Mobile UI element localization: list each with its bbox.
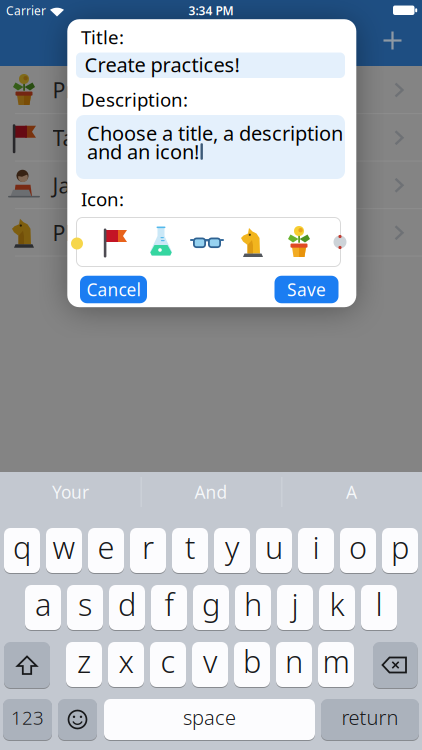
staticText: t [185, 527, 195, 567]
button[interactable]: Emoji [58, 698, 97, 741]
button[interactable]: n [276, 641, 312, 688]
staticText: a [35, 584, 51, 624]
button[interactable]: a [25, 584, 61, 631]
button[interactable]: o [340, 527, 376, 574]
staticText: s [78, 584, 92, 624]
staticText: 123 [11, 705, 44, 730]
staticText: Carrier [6, 2, 46, 18]
staticText: 3:34 PM [188, 2, 233, 18]
button[interactable]: y [214, 527, 250, 574]
staticText: d [118, 584, 136, 624]
button[interactable]: z [66, 641, 102, 688]
button[interactable]: c [150, 641, 186, 688]
staticText: And [194, 480, 227, 503]
button[interactable]: A [281, 472, 421, 512]
staticText: e [97, 527, 114, 567]
staticText: j [291, 584, 298, 624]
button[interactable]: Chess knight icon [235, 224, 271, 260]
staticText: Play chess [52, 219, 155, 247]
button[interactable]: d [109, 584, 145, 631]
button[interactable]: Javascript [0, 161, 422, 209]
staticText: w [52, 527, 75, 567]
staticText: y [225, 527, 239, 567]
staticText: i [312, 527, 319, 567]
button[interactable]: Delete [373, 641, 417, 689]
button[interactable]: Add [370, 18, 414, 62]
staticText: Title: [81, 25, 124, 49]
staticText: A [346, 480, 357, 503]
button[interactable]: s [67, 584, 103, 631]
staticText: r [142, 527, 154, 567]
staticText: Your [52, 480, 89, 503]
button[interactable]: Save [274, 276, 338, 303]
button[interactable]: And [141, 472, 281, 512]
button[interactable]: t [172, 527, 208, 574]
button[interactable]: g [193, 584, 229, 631]
staticText: l [375, 584, 382, 624]
staticText: and an icon! [87, 138, 199, 165]
staticText: Javascript [52, 171, 149, 199]
button[interactable]: Flask icon [143, 224, 179, 260]
staticText: b [243, 641, 261, 681]
button[interactable]: b [234, 641, 270, 688]
button[interactable]: Cancel [80, 276, 147, 303]
staticText: space [183, 704, 236, 731]
staticText: q [13, 527, 31, 567]
staticText: g [202, 584, 220, 624]
staticText: Cancel [86, 278, 140, 301]
button[interactable]: x [108, 641, 144, 688]
staticText: v [203, 641, 217, 681]
button[interactable]: Shift [4, 641, 50, 689]
button[interactable]: Practice [0, 66, 422, 114]
button[interactable]: Plant icon [281, 224, 317, 260]
staticText: c [160, 641, 175, 681]
staticText: h [244, 584, 262, 624]
button[interactable]: 123 [3, 698, 52, 741]
button[interactable]: h [235, 584, 271, 631]
staticText: k [329, 584, 344, 624]
button[interactable]: e [88, 527, 124, 574]
staticText: x [118, 641, 133, 681]
button[interactable]: Flag icon [97, 224, 133, 260]
button[interactable]: q [4, 527, 40, 574]
button[interactable]: i [298, 527, 334, 574]
button[interactable]: return [321, 698, 419, 741]
button[interactable]: Play chess [0, 209, 422, 256]
button[interactable]: r [130, 527, 166, 574]
staticText: o [349, 527, 367, 567]
button[interactable]: l [361, 584, 397, 631]
button[interactable]: f [151, 584, 187, 631]
button[interactable]: Your [0, 472, 140, 512]
button[interactable]: p [382, 527, 418, 574]
staticText: f [164, 584, 173, 624]
staticText: m [322, 641, 349, 681]
button[interactable]: j [277, 584, 313, 631]
staticText: Description: [81, 87, 188, 112]
staticText: Choose a title, a description [87, 120, 343, 146]
staticText: p [391, 527, 409, 567]
button[interactable]: space [104, 698, 315, 741]
button[interactable]: Take a walk [0, 114, 422, 161]
button[interactable]: u [256, 527, 292, 574]
staticText: z [77, 641, 91, 681]
staticText: Create practices! [84, 51, 239, 78]
staticText: return [341, 704, 398, 731]
button[interactable]: v [192, 641, 228, 688]
staticText: Icon: [81, 187, 124, 211]
button[interactable]: m [318, 641, 354, 688]
staticText: u [265, 527, 283, 567]
staticText: Save [287, 278, 326, 301]
staticText: Take a walk [52, 124, 167, 152]
staticText: Practice [52, 76, 131, 104]
button[interactable]: w [46, 527, 82, 574]
staticText: n [285, 641, 303, 681]
button[interactable]: k [319, 584, 355, 631]
button[interactable]: Glasses icon [189, 224, 225, 260]
